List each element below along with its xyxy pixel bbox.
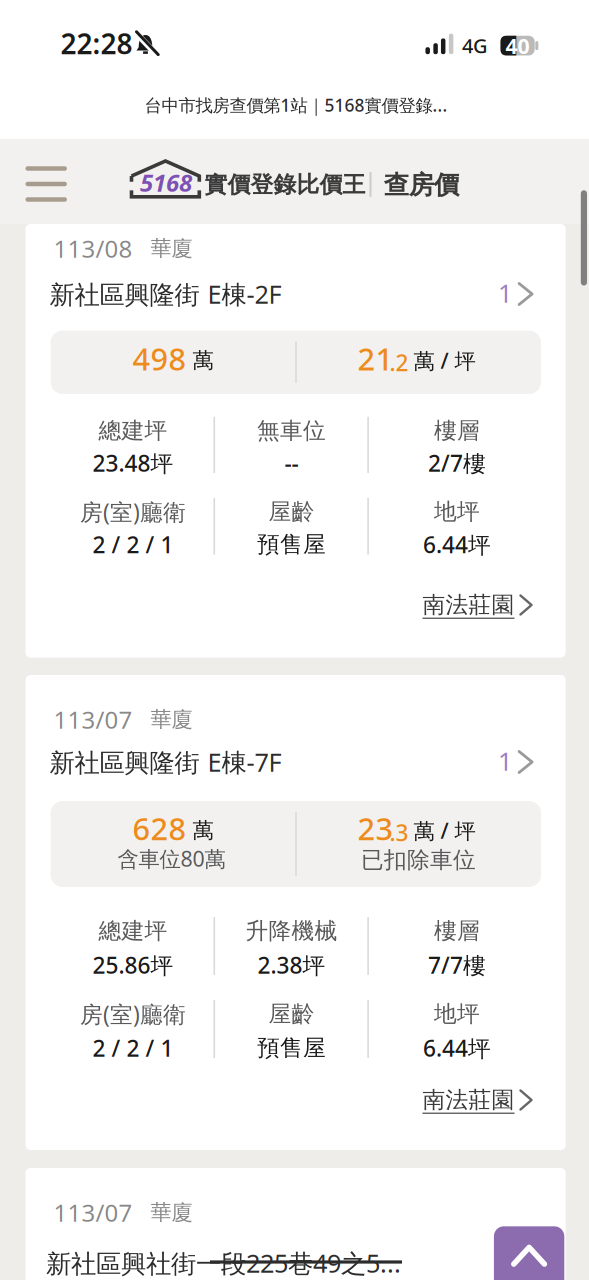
staticText: 屋齡 [269, 498, 315, 526]
staticText: 6.44坪 [423, 1033, 491, 1063]
staticText: 樓層 [434, 917, 480, 945]
staticText: 預售屋 [257, 1034, 326, 1062]
button[interactable]: 113/07 [26, 1168, 566, 1280]
staticText: 498 [133, 338, 187, 379]
staticText: 升降機械 [246, 917, 338, 945]
staticText: 南法莊園 [422, 591, 514, 619]
staticText: 新社區興社街一段225巷49之5... [46, 1246, 401, 1280]
button[interactable]: 113/07 [26, 675, 566, 1150]
staticText: 已扣除車位 [361, 846, 476, 874]
button[interactable]: 選單 [20, 160, 72, 208]
staticText: 113/07 [53, 704, 132, 735]
staticText: 21 [357, 338, 393, 379]
staticText: 628 [133, 808, 187, 849]
staticText: 萬 / 坪 [414, 816, 476, 844]
staticText: 新社區興隆街 E棟-7F [49, 745, 281, 779]
staticText: 25.86坪 [92, 950, 173, 980]
staticText: 23 [357, 808, 393, 849]
staticText: 2/7樓 [428, 448, 486, 478]
staticText: 房(室)廳衛 [80, 497, 186, 527]
staticText: 2 / 2 / 1 [92, 529, 173, 559]
button[interactable]: 南法莊園 [443, 590, 539, 620]
staticText: 6.44坪 [423, 529, 491, 559]
staticText: 113/08 [53, 233, 132, 264]
staticText: 地坪 [434, 1000, 480, 1028]
staticText: 4G [462, 32, 488, 59]
button[interactable]: 回到頂部 [494, 1226, 564, 1280]
staticText: 新社區興隆街 E棟-2F [49, 277, 281, 311]
staticText: 台中市找房查價第1站｜5168實價登錄... [144, 93, 447, 116]
staticText: 華廈 [150, 706, 192, 733]
button[interactable]: 查房價 [384, 169, 459, 200]
staticText: 萬 [193, 347, 214, 374]
staticText: 總建坪 [98, 917, 167, 945]
staticText: 萬 [193, 817, 214, 843]
staticText: 實價登錄比價王 [204, 171, 365, 199]
staticText: 樓層 [434, 417, 480, 445]
staticText: 總建坪 [98, 417, 167, 445]
button[interactable]: 113/08 [26, 224, 566, 658]
staticText: 萬 / 坪 [414, 346, 476, 375]
staticText: 預售屋 [257, 531, 326, 558]
staticText: 2.38坪 [258, 950, 326, 980]
button[interactable]: 5168 實價登錄比價王 [131, 161, 199, 197]
staticText: .2 [390, 347, 409, 377]
staticText: 22:28 [60, 25, 132, 62]
staticText: 華廈 [150, 235, 192, 262]
staticText: .3 [390, 817, 409, 847]
staticText: 23.48坪 [92, 448, 173, 478]
staticText: 1 [498, 276, 512, 310]
staticText: 無車位 [257, 417, 326, 445]
staticText: 7/7樓 [428, 950, 486, 980]
staticText: 2 / 2 / 1 [92, 1033, 173, 1063]
staticText: -- [285, 448, 299, 478]
staticText: 地坪 [434, 498, 480, 526]
staticText: 華廈 [150, 1199, 192, 1226]
staticText: 40 [506, 31, 530, 60]
staticText: 南法莊園 [422, 1086, 514, 1114]
staticText: 1 [498, 744, 512, 778]
staticText: 含車位80萬 [117, 844, 225, 873]
button[interactable]: 南法莊園 [443, 1085, 539, 1115]
staticText: 5168 [140, 166, 192, 198]
staticText: 屋齡 [269, 1000, 315, 1028]
staticText: 查房價 [384, 169, 459, 200]
staticText: 113/07 [53, 1197, 132, 1228]
staticText: 房(室)廳衛 [80, 999, 186, 1029]
